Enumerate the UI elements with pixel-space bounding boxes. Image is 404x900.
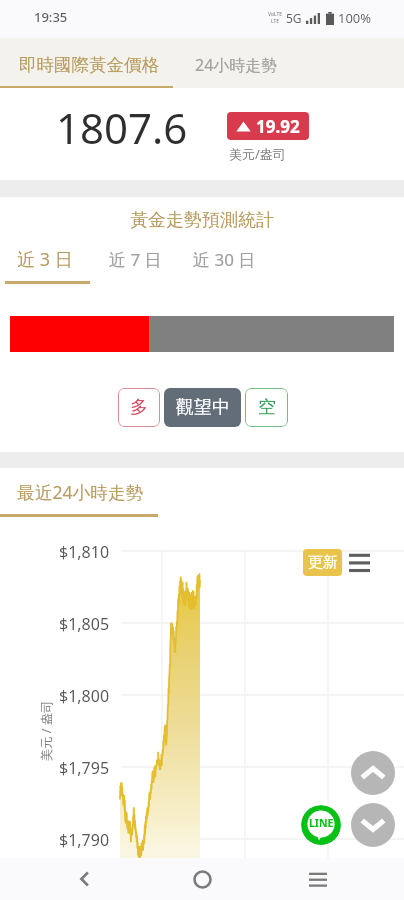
staticText: $1,810: [59, 541, 110, 563]
button[interactable]: 19.92: [227, 112, 309, 140]
button[interactable]: 24小時走勢: [177, 41, 296, 89]
staticText: 空: [258, 396, 276, 419]
button[interactable]: Scroll down: [351, 803, 395, 847]
button[interactable]: 近 30 日: [180, 240, 268, 278]
button[interactable]: 近 7 日: [90, 240, 180, 278]
staticText: 近 30 日: [193, 248, 256, 271]
button[interactable]: 近 3 日: [0, 240, 90, 278]
staticText: $1,805: [59, 613, 110, 635]
staticText: 即時國際黃金價格: [19, 54, 159, 76]
staticText: 多: [130, 396, 148, 419]
staticText: $1,800: [59, 685, 110, 707]
button[interactable]: Scroll up: [351, 751, 395, 795]
staticText: 近 3 日: [17, 247, 73, 272]
staticText: VoLTE: [268, 11, 283, 18]
staticText: LINE: [309, 816, 334, 830]
staticText: 100%: [338, 9, 372, 27]
button[interactable]: 空: [245, 388, 288, 427]
staticText: 24小時走勢: [195, 54, 278, 76]
staticText: 1807.6: [56, 99, 188, 156]
button[interactable]: Share on LINE: [301, 805, 341, 845]
staticText: $1,795: [59, 757, 110, 779]
staticText: 5G: [286, 10, 302, 26]
staticText: 最近24小時走勢: [17, 480, 144, 504]
staticText: 美元/盎司: [229, 145, 286, 163]
staticText: 近 7 日: [109, 248, 162, 271]
staticText: 更新: [308, 553, 338, 572]
button[interactable]: Home: [172, 858, 232, 900]
button[interactable]: 多: [118, 388, 160, 427]
staticText: LTE: [271, 18, 280, 25]
staticText: $1,790: [59, 829, 110, 851]
button[interactable]: Back: [55, 858, 115, 900]
button[interactable]: Recent apps: [288, 858, 348, 900]
staticText: 黃金走勢預測統計: [0, 209, 404, 232]
button[interactable]: 更新: [303, 549, 342, 576]
button[interactable]: Menu: [349, 553, 370, 572]
button[interactable]: 觀望中: [164, 388, 241, 427]
button[interactable]: 即時國際黃金價格: [3, 41, 174, 89]
staticText: 19:35: [34, 8, 68, 26]
staticText: 觀望中: [176, 396, 230, 419]
staticText: 美元 / 盎司: [37, 699, 54, 761]
staticText: 19.92: [256, 115, 300, 138]
